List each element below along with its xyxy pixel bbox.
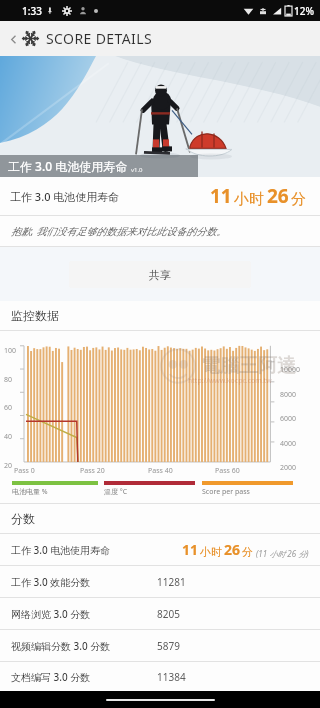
staticText: Score per pass	[202, 487, 250, 497]
button[interactable]: 视频编辑分数 3.0 分数	[11, 630, 309, 661]
staticText: 工作 3.0 电池使用寿命	[8, 158, 128, 174]
button[interactable]: 工作 3.0 效能分数	[11, 566, 309, 597]
staticText: 工作 3.0 效能分数	[11, 575, 91, 589]
staticText: 12%	[294, 4, 314, 18]
staticText: 文档编写 3.0 分数	[11, 670, 91, 684]
staticText: Pass 20	[80, 466, 105, 476]
staticText: 8205	[157, 607, 180, 621]
staticText: 工作 3.0 电池使用寿命	[11, 543, 111, 557]
button[interactable]: Back	[4, 30, 22, 48]
staticText: 100	[4, 346, 17, 356]
staticText: Pass 40	[148, 466, 173, 476]
button[interactable]: 共享	[69, 261, 251, 288]
staticText: 监控数据	[11, 308, 59, 323]
staticText: 6000	[280, 414, 297, 424]
staticText: 5879	[157, 639, 180, 653]
staticText: 工作 3.0 电池使用寿命	[10, 189, 120, 204]
staticText: 11281	[157, 575, 186, 589]
staticText: 60	[4, 403, 13, 413]
staticText: http://www.kocpc.com.tw	[188, 376, 272, 386]
staticText: 11	[182, 540, 199, 559]
staticText: 视频编辑分数 3.0 分数	[11, 639, 111, 653]
staticText: 4000	[280, 439, 297, 449]
staticText: 26	[267, 183, 289, 209]
button[interactable]: 网络浏览 3.0 分数	[11, 598, 309, 629]
staticText: 1:33	[22, 4, 42, 18]
staticText: 20	[4, 461, 13, 471]
button[interactable]: 文档编写 3.0 分数	[11, 662, 309, 691]
staticText: Pass 60	[215, 466, 240, 476]
staticText: 2000	[280, 463, 297, 473]
staticText: v1.0	[131, 166, 143, 174]
staticText: 小时	[200, 545, 222, 559]
staticText: (11 小时 26 分)	[256, 548, 309, 559]
button[interactable]: 工作 3.0 电池使用寿命	[11, 534, 309, 565]
staticText: 温度 °C	[104, 487, 128, 497]
staticText: 11	[210, 183, 232, 209]
staticText: 分	[242, 545, 253, 559]
staticText: SCORE DETAILS	[46, 29, 153, 48]
staticText: Pass 0	[14, 466, 35, 476]
staticText: 分	[291, 190, 306, 209]
staticText: 26	[224, 540, 241, 559]
staticText: 40	[4, 432, 13, 442]
staticText: 网络浏览 3.0 分数	[11, 607, 91, 621]
staticText: 電腦王阿達	[201, 354, 296, 378]
staticText: 11384	[157, 670, 186, 684]
staticText: 10000	[280, 365, 301, 375]
staticText: 分数	[11, 511, 35, 526]
staticText: 80	[4, 375, 13, 385]
staticText: 共享	[149, 268, 171, 282]
staticText: 抱歉, 我们没有足够的数据来对比此设备的分数。	[11, 224, 227, 238]
staticText: 小时	[234, 190, 264, 209]
staticText: 电池电量 %	[12, 487, 48, 497]
button[interactable]: Home gesture	[106, 699, 215, 701]
staticText: 8000	[280, 390, 297, 400]
